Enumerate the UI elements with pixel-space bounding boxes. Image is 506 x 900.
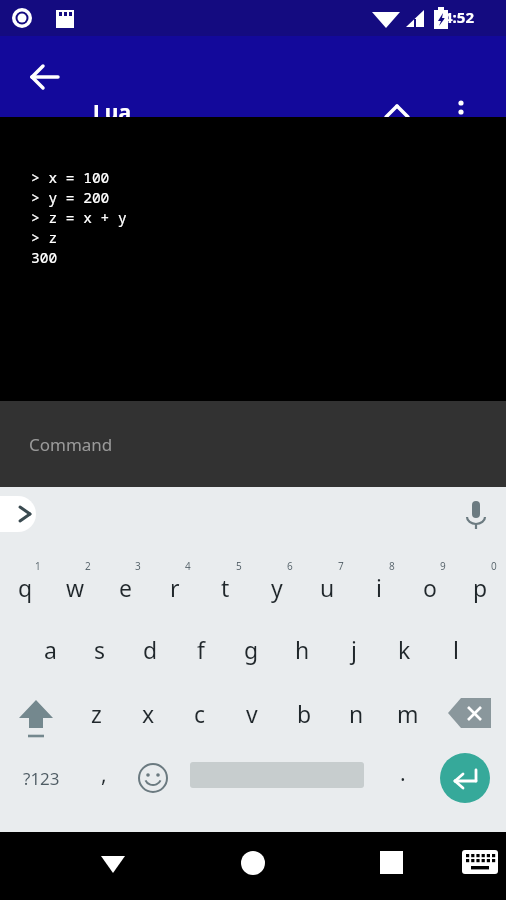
staticText: g: [244, 634, 259, 665]
button[interactable]: Backspace: [434, 682, 506, 744]
staticText: j: [351, 634, 357, 665]
button[interactable]: v: [226, 682, 278, 744]
staticText: 2: [85, 559, 91, 573]
button[interactable]: Enter: [440, 753, 490, 803]
button[interactable]: r: [150, 550, 200, 614]
button[interactable]: q: [0, 550, 50, 614]
button[interactable]: z: [71, 682, 122, 744]
staticText: > z = x + y: [31, 207, 127, 227]
button[interactable]: Switch keyboard: [458, 842, 500, 884]
staticText: 1: [35, 559, 41, 573]
staticText: .: [400, 759, 406, 788]
staticText: ?123: [23, 767, 60, 790]
button[interactable]: Emoji: [129, 746, 177, 810]
staticText: l: [453, 634, 459, 665]
button[interactable]: ,: [80, 746, 128, 810]
staticText: c: [194, 698, 206, 729]
staticText: r: [170, 572, 180, 603]
staticText: 6: [287, 559, 293, 573]
staticText: > y = 200: [31, 187, 110, 207]
button[interactable]: ?123: [6, 746, 76, 810]
staticText: > z: [31, 227, 58, 247]
staticText: 5: [236, 559, 242, 573]
staticText: 9: [440, 559, 446, 573]
button[interactable]: Voice input: [458, 497, 494, 533]
staticText: 3: [135, 559, 141, 573]
button[interactable]: b: [278, 682, 330, 744]
button[interactable]: a: [25, 618, 75, 680]
staticText: d: [143, 634, 158, 665]
button[interactable]: Hide keyboard: [89, 839, 137, 887]
button[interactable]: Shift: [0, 682, 71, 744]
staticText: i: [376, 572, 382, 603]
staticText: a: [44, 634, 57, 665]
staticText: ,: [101, 760, 107, 789]
staticText: s: [94, 634, 106, 665]
button[interactable]: k: [379, 618, 430, 680]
button[interactable]: i: [353, 550, 404, 614]
staticText: v: [246, 698, 258, 729]
button[interactable]: n: [330, 682, 382, 744]
button[interactable]: Collapse: [375, 91, 419, 135]
staticText: z: [91, 698, 102, 729]
staticText: p: [473, 572, 488, 603]
staticText: 8: [389, 559, 395, 573]
staticText: f: [197, 634, 205, 665]
staticText: b: [297, 698, 312, 729]
staticText: 300: [31, 247, 58, 267]
staticText: h: [295, 634, 310, 665]
button[interactable]: l: [430, 618, 481, 680]
button[interactable]: Home: [229, 839, 277, 887]
staticText: n: [349, 698, 364, 729]
staticText: 7: [338, 559, 344, 573]
button[interactable]: .: [382, 746, 424, 810]
staticText: w: [66, 572, 85, 603]
button[interactable]: u: [302, 550, 353, 614]
staticText: o: [423, 572, 437, 603]
button[interactable]: x: [122, 682, 174, 744]
button[interactable]: Expand suggestions: [0, 496, 36, 532]
button[interactable]: g: [226, 618, 277, 680]
staticText: y: [271, 572, 283, 603]
button[interactable]: m: [382, 682, 434, 744]
staticText: 4:52: [419, 7, 499, 27]
staticText: 4: [185, 559, 191, 573]
staticText: e: [119, 572, 132, 603]
button[interactable]: f: [175, 618, 226, 680]
button[interactable]: e: [100, 550, 150, 614]
button[interactable]: d: [125, 618, 175, 680]
button[interactable]: y: [251, 550, 302, 614]
staticText: u: [320, 572, 335, 603]
button[interactable]: Command: [0, 401, 506, 487]
staticText: m: [397, 698, 419, 729]
staticText: 0: [491, 559, 497, 573]
button[interactable]: p: [455, 550, 506, 614]
staticText: t: [221, 572, 230, 603]
button[interactable]: s: [75, 618, 125, 680]
button[interactable]: t: [200, 550, 251, 614]
staticText: Lua: [93, 98, 131, 127]
staticText: Command: [29, 433, 113, 456]
button[interactable]: h: [277, 618, 328, 680]
button[interactable]: j: [328, 618, 379, 680]
staticText: k: [398, 634, 411, 665]
staticText: > x = 100: [31, 167, 110, 187]
staticText: q: [18, 572, 33, 603]
button[interactable]: c: [174, 682, 226, 744]
staticText: x: [142, 698, 155, 729]
button[interactable]: o: [404, 550, 455, 614]
button[interactable]: Back: [22, 55, 66, 99]
button[interactable]: More options: [439, 91, 483, 135]
button[interactable]: w: [50, 550, 100, 614]
button[interactable]: Recents: [368, 839, 416, 887]
